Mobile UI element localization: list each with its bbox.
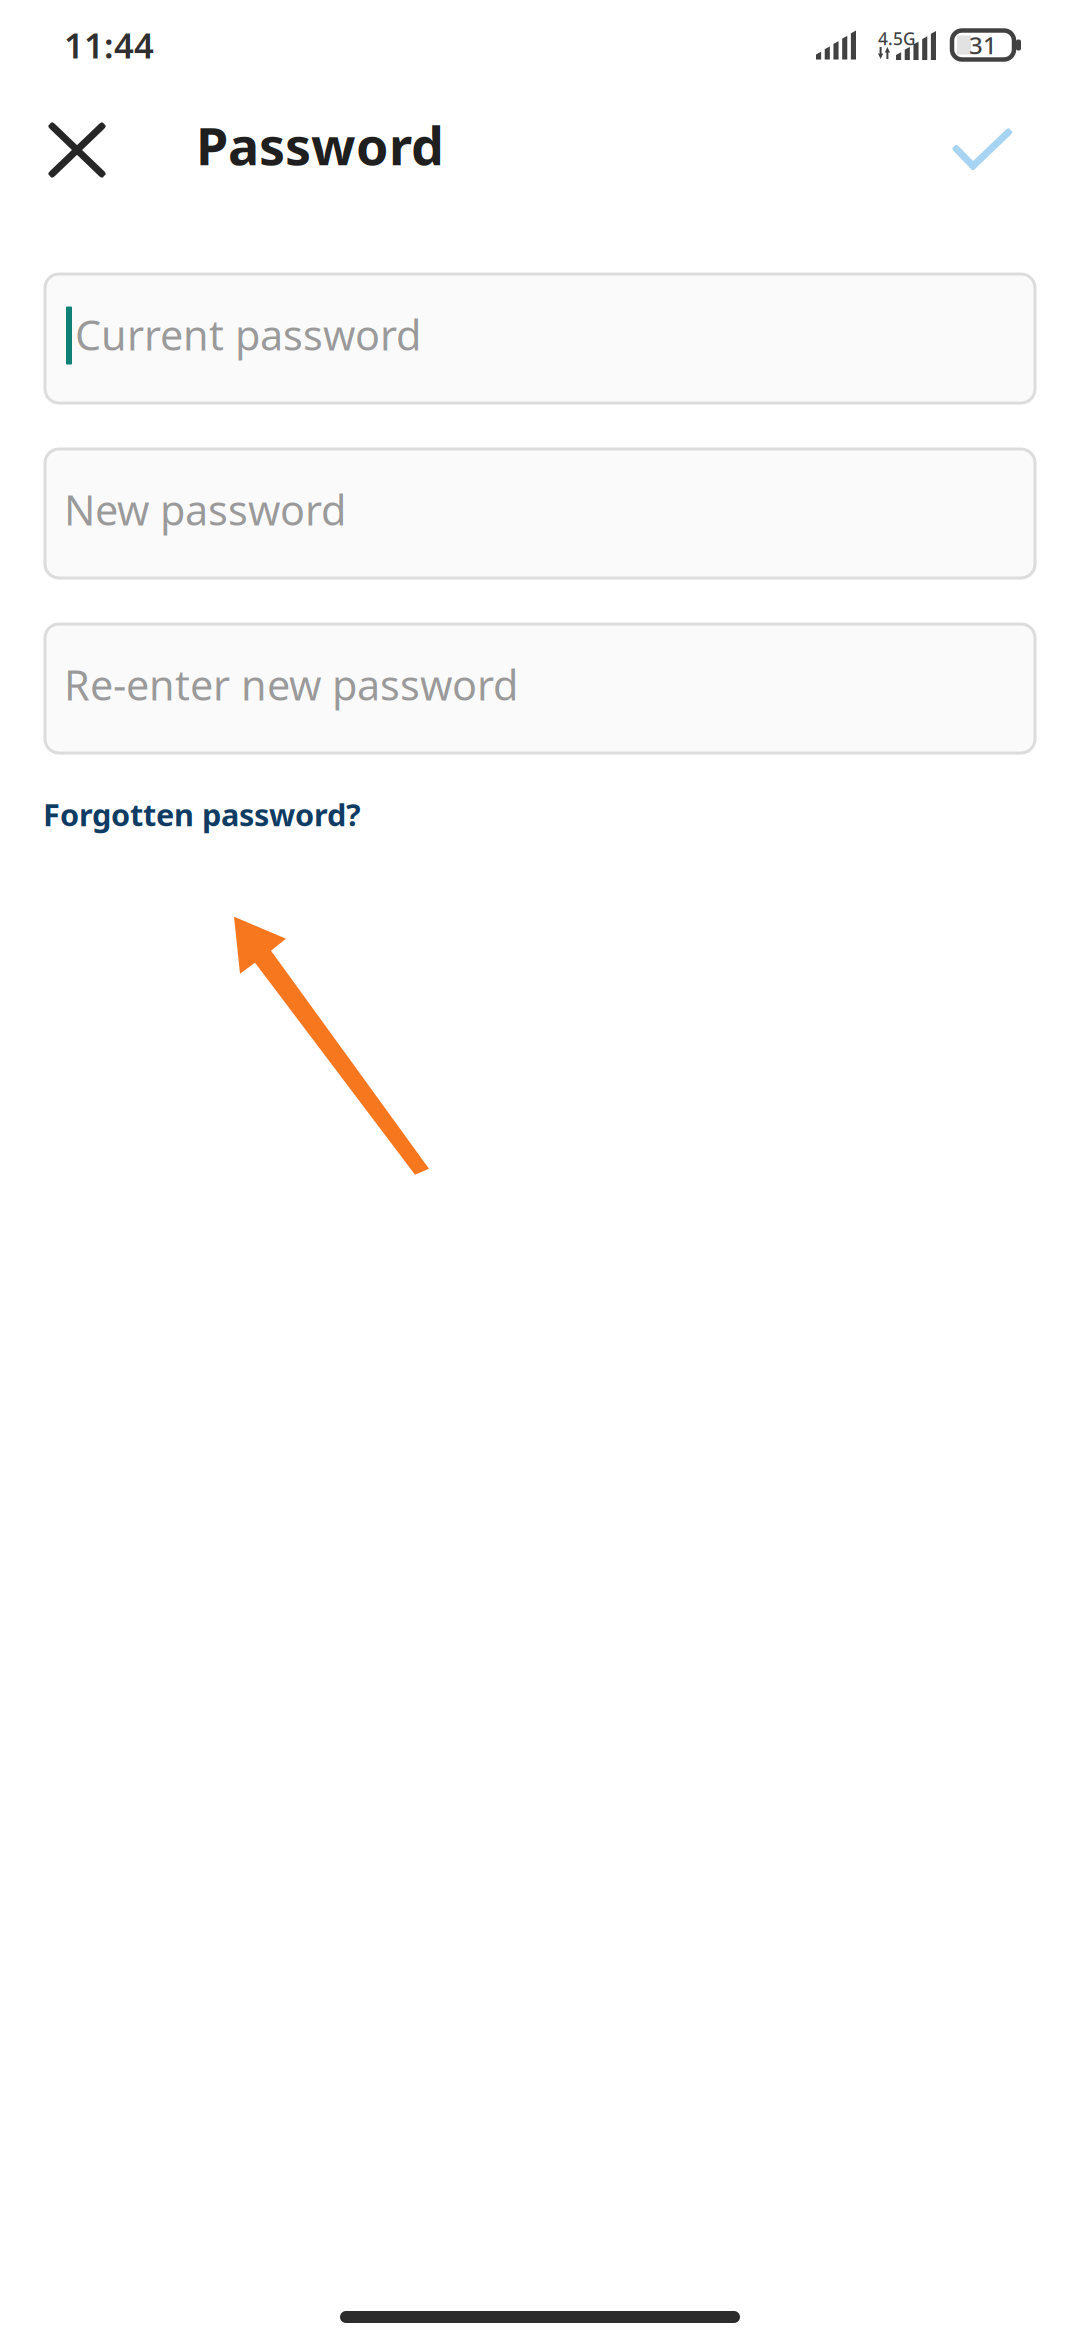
button[interactable]: Forgotten password? [45,794,363,835]
button[interactable]: Close [0,90,133,200]
button[interactable]: Current password [45,274,1035,403]
button[interactable]: New password [45,449,1035,578]
staticText: New password [64,482,346,537]
button[interactable]: Save [923,91,1080,199]
staticText: 11:44 [64,22,154,68]
staticText: Current password [75,307,421,362]
staticText: Forgotten password? [43,794,361,835]
staticText: 4.5G [878,27,916,50]
staticText: 31 [969,29,997,61]
button[interactable]: Re-enter new password [45,624,1035,753]
staticText: Password [196,110,444,180]
staticText: Re-enter new password [64,657,518,712]
